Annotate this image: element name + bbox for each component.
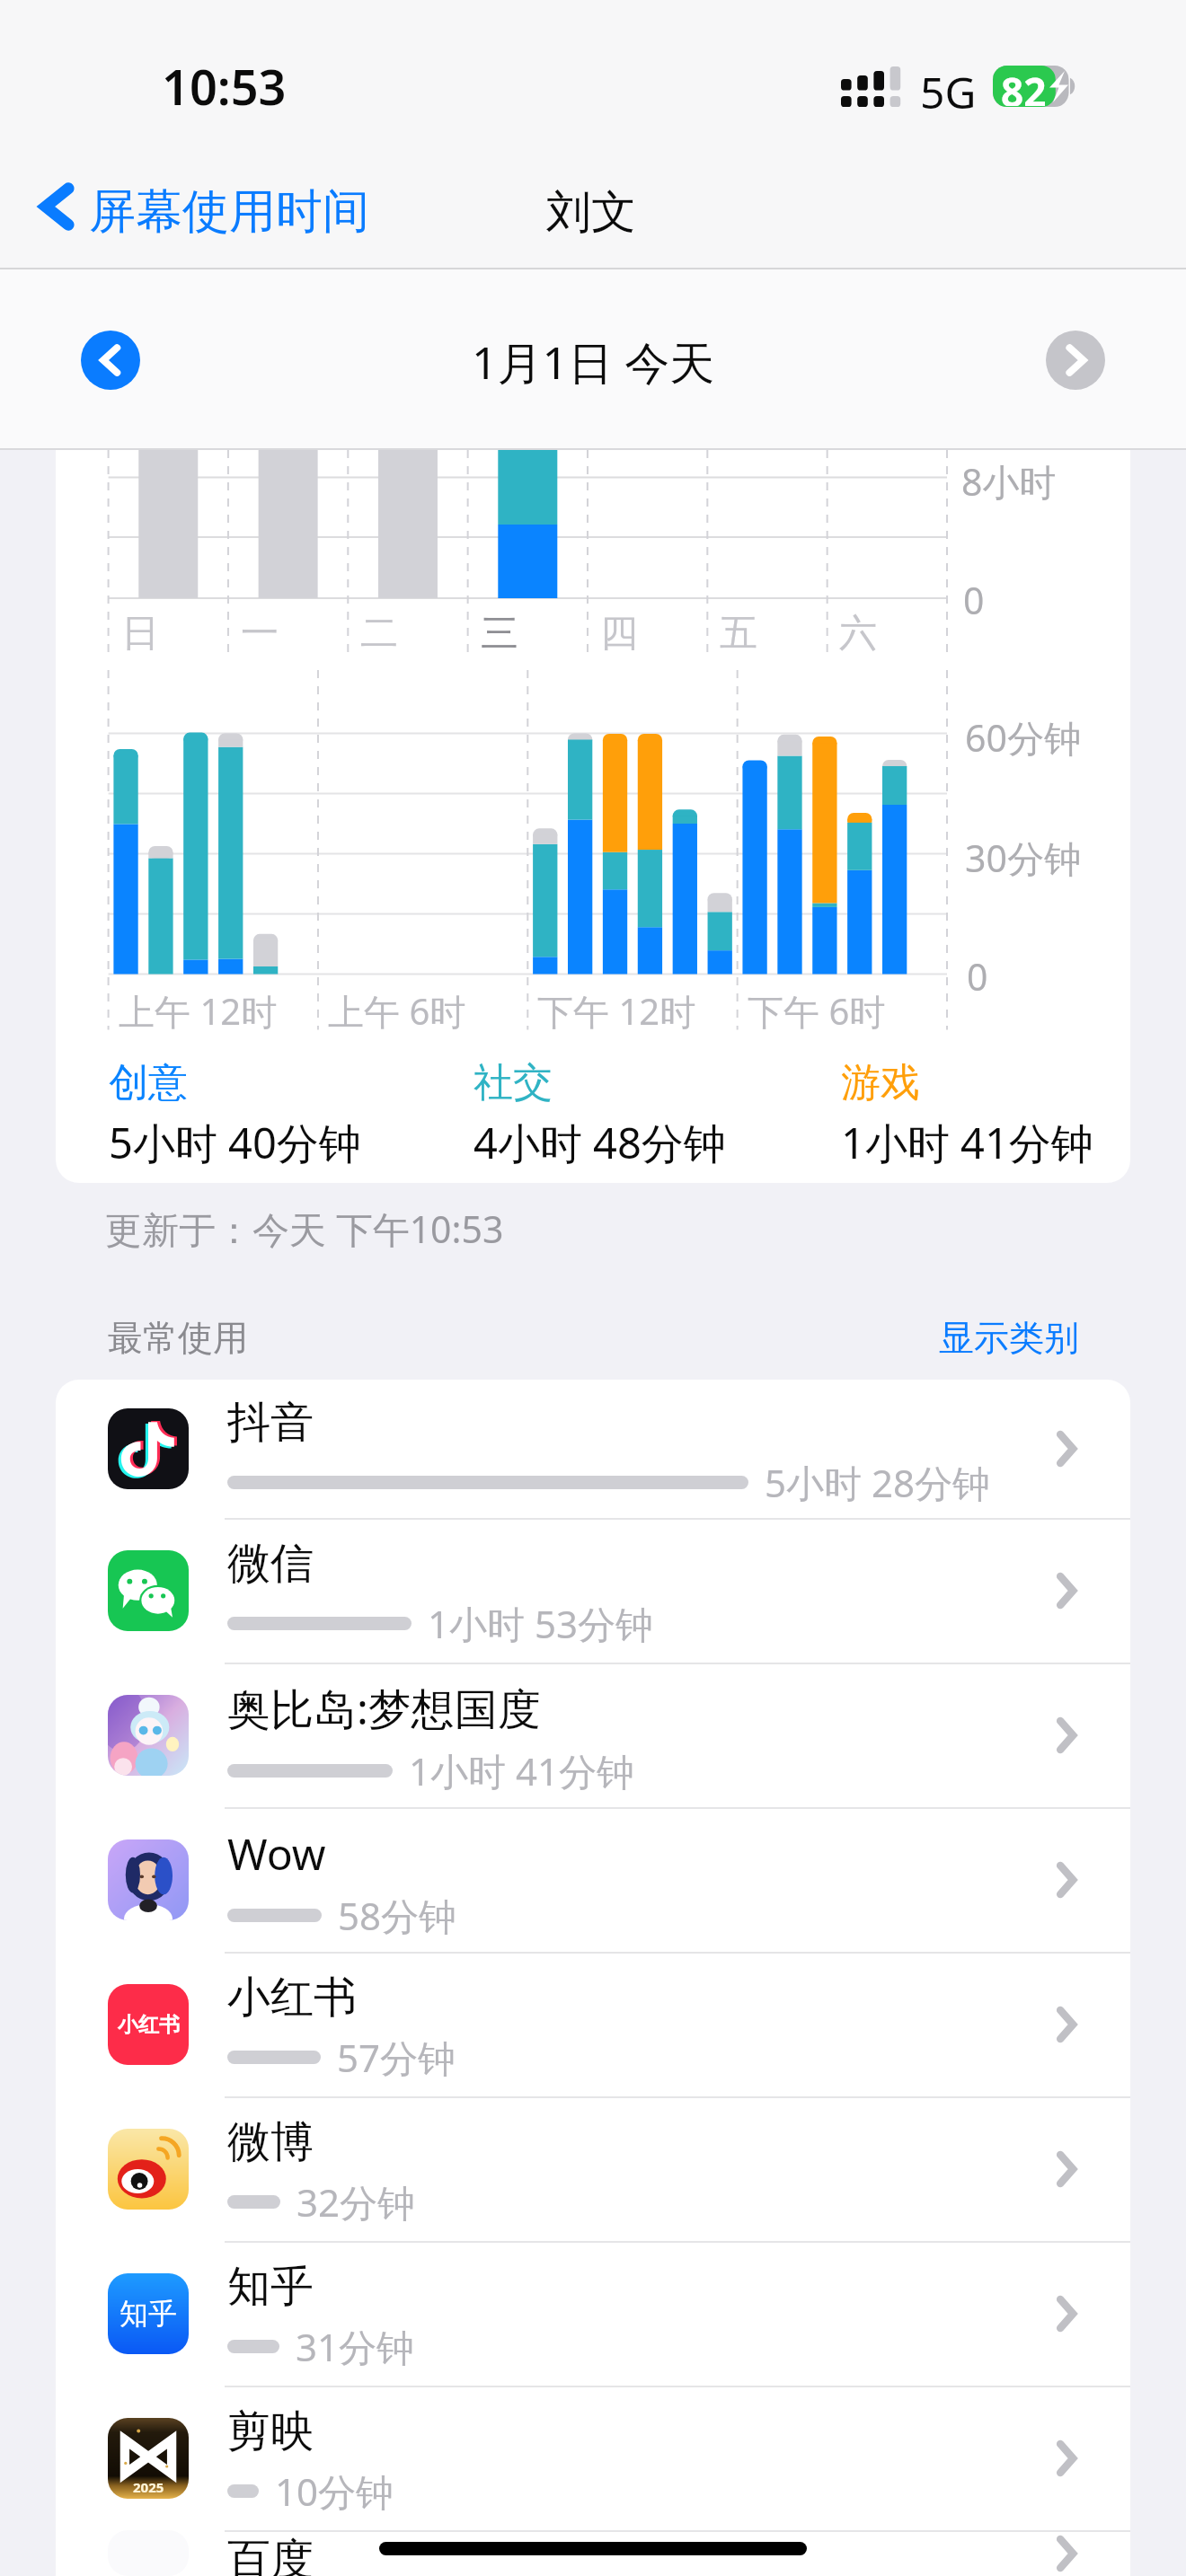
staticText: 游戏 xyxy=(841,1058,920,1107)
staticText: 二 xyxy=(360,610,398,657)
staticText: 日 xyxy=(121,610,159,657)
staticText: 82 xyxy=(1001,65,1047,106)
staticText: 10分钟 xyxy=(275,2466,394,2517)
button[interactable]: Next day xyxy=(1046,331,1105,390)
staticText: 32分钟 xyxy=(296,2176,416,2228)
staticText: 下午 6时 xyxy=(748,986,886,1036)
staticText: 1小时 53分钟 xyxy=(428,1598,653,1649)
staticText: 知乎 xyxy=(227,2260,314,2314)
button[interactable]: 微信 xyxy=(56,1518,1130,1663)
button[interactable]: 小红书 xyxy=(56,1952,1130,2096)
staticText: 五 xyxy=(720,610,757,657)
staticText: 创意 xyxy=(109,1058,188,1107)
staticText: 58分钟 xyxy=(338,1890,457,1941)
staticText: 三 xyxy=(481,610,518,657)
staticText: 5小时 40分钟 xyxy=(109,1114,361,1171)
button[interactable]: 奥比岛:梦想国度 xyxy=(56,1663,1130,1807)
staticText: 57分钟 xyxy=(337,2032,456,2083)
staticText: 10:53 xyxy=(162,53,287,119)
button[interactable]: 百度 xyxy=(56,2530,1130,2576)
staticText: 1小时 41分钟 xyxy=(841,1114,1093,1171)
staticText: 一 xyxy=(241,610,279,657)
staticText: 六 xyxy=(839,610,877,657)
button[interactable]: Previous day xyxy=(81,331,140,390)
button[interactable]: 抖音 xyxy=(56,1380,1130,1518)
staticText: 小红书 xyxy=(227,1971,357,2025)
button[interactable]: 显示类别 xyxy=(939,1316,1079,1360)
staticText: 剪映 xyxy=(227,2404,314,2458)
staticText: 刘文 xyxy=(546,184,636,241)
staticText: 60分钟 xyxy=(965,712,1081,763)
button[interactable]: 知乎 xyxy=(56,2241,1130,2386)
button[interactable]: 微博 xyxy=(56,2096,1130,2241)
staticText: 0 xyxy=(967,951,988,1001)
staticText: 30分钟 xyxy=(965,833,1081,883)
staticText: Wow xyxy=(227,1824,326,1883)
staticText: 2025 xyxy=(133,2478,164,2496)
staticText: 社交 xyxy=(474,1058,553,1107)
button[interactable]: 2025 xyxy=(56,2386,1130,2530)
staticText: 百度 xyxy=(227,2533,314,2576)
staticText: 四 xyxy=(600,610,638,657)
staticText: 0 xyxy=(963,575,985,625)
staticText: 更新于：今天 下午10:53 xyxy=(105,1204,504,1254)
button[interactable]: 屏幕使用时间 xyxy=(31,170,389,254)
staticText: 上午 12时 xyxy=(119,986,278,1036)
staticText: 下午 12时 xyxy=(537,986,696,1036)
button[interactable]: Wow xyxy=(56,1807,1130,1952)
staticText: 屏幕使用时间 xyxy=(89,182,369,242)
staticText: 上午 6时 xyxy=(328,986,466,1036)
staticText: 最常使用 xyxy=(108,1316,248,1360)
staticText: 奥比岛:梦想国度 xyxy=(227,1679,541,1738)
staticText: 5G xyxy=(920,63,977,121)
staticText: 5小时 28分钟 xyxy=(765,1457,990,1508)
staticText: 8小时 xyxy=(961,456,1057,507)
staticText: 小红书 xyxy=(118,2012,180,2038)
staticText: 抖音 xyxy=(227,1396,314,1450)
staticText: 知乎 xyxy=(119,2296,177,2332)
staticText: 31分钟 xyxy=(296,2321,415,2372)
staticText: 4小时 48分钟 xyxy=(474,1114,726,1171)
staticText: 1月1日 今天 xyxy=(472,331,715,393)
staticText: 微信 xyxy=(227,1537,314,1591)
staticText: 微博 xyxy=(227,2115,314,2169)
staticText: 1小时 41分钟 xyxy=(409,1745,634,1796)
